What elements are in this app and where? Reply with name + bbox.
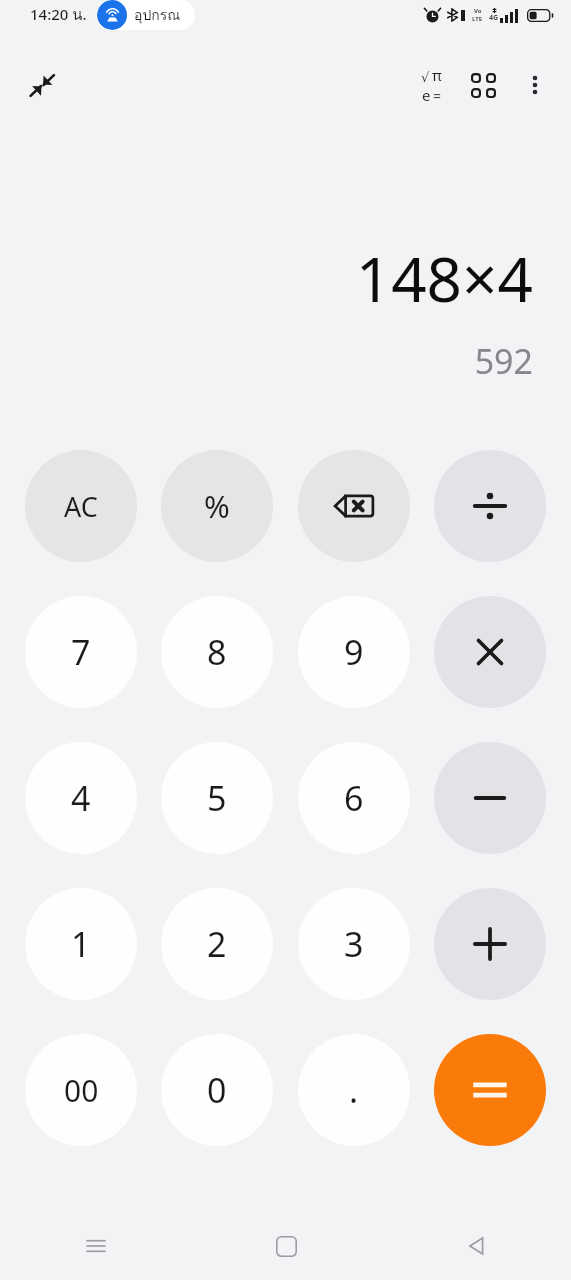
button[interactable]: Collapse xyxy=(16,59,68,111)
staticText: 3 xyxy=(344,921,364,967)
button[interactable]: Scientific xyxy=(405,59,457,111)
button[interactable]: 6 xyxy=(298,742,410,854)
button[interactable]: 1 xyxy=(25,888,137,1000)
button[interactable]: 2 xyxy=(161,888,273,1000)
staticText: 4 xyxy=(71,775,91,821)
staticText: 4G xyxy=(489,13,499,23)
button[interactable]: . xyxy=(298,1034,410,1146)
button[interactable]: Backspace xyxy=(298,450,410,562)
button[interactable]: More options xyxy=(509,59,561,111)
button[interactable]: Subtract xyxy=(434,742,546,854)
button[interactable]: 0 xyxy=(161,1034,273,1146)
button[interactable]: 3 xyxy=(298,888,410,1000)
staticText: . xyxy=(349,1067,359,1113)
staticText: 9 xyxy=(344,629,364,675)
button[interactable]: 4 xyxy=(25,742,137,854)
staticText: 14:20 น. xyxy=(30,3,87,27)
staticText: 6 xyxy=(344,775,364,821)
staticText: 1 xyxy=(71,921,91,967)
button[interactable]: 8 xyxy=(161,596,273,708)
staticText: 8 xyxy=(207,629,227,675)
button[interactable]: Multiply xyxy=(434,596,546,708)
button[interactable]: 7 xyxy=(25,596,137,708)
button[interactable]: Converters xyxy=(457,59,509,111)
staticText: e xyxy=(422,85,431,105)
staticText: 2 xyxy=(207,921,227,967)
button[interactable]: 00 xyxy=(25,1034,137,1146)
button[interactable]: Back xyxy=(381,1212,571,1280)
staticText: LTE xyxy=(472,15,483,23)
button[interactable]: % xyxy=(161,450,273,562)
button[interactable]: Divide xyxy=(434,450,546,562)
button[interactable]: AC xyxy=(25,450,137,562)
staticText: 5 xyxy=(207,775,227,821)
staticText: 7 xyxy=(71,629,91,675)
button[interactable]: Home xyxy=(191,1212,381,1280)
staticText: 592 xyxy=(474,338,533,384)
staticText: AC xyxy=(64,488,98,525)
staticText: Vo xyxy=(474,7,482,15)
staticText: อุปกรณ xyxy=(134,4,181,26)
staticText: √ xyxy=(421,70,430,85)
button[interactable]: 9 xyxy=(298,596,410,708)
staticText: % xyxy=(204,485,230,527)
button[interactable]: Equals xyxy=(434,1034,546,1146)
staticText: 148×4 xyxy=(355,236,533,320)
staticText: π xyxy=(432,65,442,85)
staticText: 00 xyxy=(64,1070,99,1111)
staticText: 0 xyxy=(207,1067,227,1113)
button[interactable]: Recents xyxy=(0,1212,191,1280)
button[interactable]: Add xyxy=(434,888,546,1000)
staticText: = xyxy=(433,86,442,105)
button[interactable]: 5 xyxy=(161,742,273,854)
